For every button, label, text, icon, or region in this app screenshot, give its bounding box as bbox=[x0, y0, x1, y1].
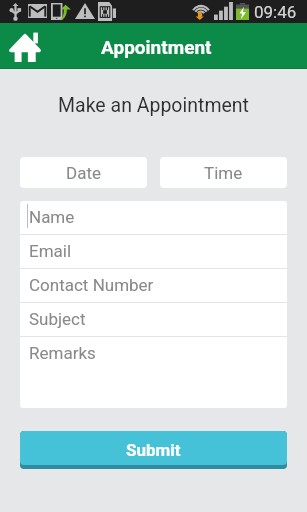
button[interactable]: Remarks bbox=[20, 337, 287, 408]
staticText: Name bbox=[29, 207, 75, 227]
button[interactable]: Home bbox=[0, 23, 52, 69]
staticText: 09:46 bbox=[254, 2, 297, 22]
staticText: Remarks bbox=[29, 343, 96, 363]
button[interactable]: Name bbox=[20, 201, 287, 234]
button[interactable]: Date bbox=[20, 157, 147, 188]
staticText: Date bbox=[66, 163, 101, 183]
staticText: Submit bbox=[126, 440, 181, 460]
staticText: Appointment bbox=[101, 36, 212, 58]
staticText: Contact Number bbox=[29, 275, 154, 295]
staticText: Subject bbox=[29, 309, 86, 329]
staticText: Make an Appointment bbox=[0, 94, 307, 117]
staticText: Email bbox=[29, 241, 72, 261]
button[interactable]: Contact Number bbox=[20, 269, 287, 302]
button[interactable]: Time bbox=[160, 157, 287, 188]
button[interactable]: Subject bbox=[20, 303, 287, 336]
button[interactable]: Submit bbox=[20, 431, 287, 469]
staticText: Time bbox=[204, 163, 243, 183]
button[interactable]: Email bbox=[20, 235, 287, 268]
